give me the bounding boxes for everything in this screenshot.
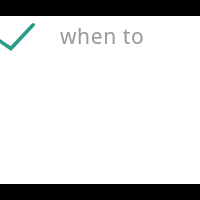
- button[interactable]: Completed: [0, 16, 200, 60]
- other: Completed: [0, 16, 200, 60]
- staticText: when to: [60, 22, 145, 51]
